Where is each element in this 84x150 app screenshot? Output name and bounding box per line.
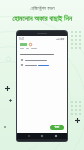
staticText: হোমলোন অফার বাছাই নিন [12, 13, 72, 23]
button[interactable]: Back [27, 134, 31, 138]
staticText: 9:41 [19, 37, 25, 41]
button[interactable]: পরবর্তী [50, 125, 64, 130]
button[interactable]: Home [40, 134, 44, 138]
staticText: পরবর্তী [54, 126, 60, 129]
button[interactable]: Recents [54, 134, 58, 138]
staticText: রেজিস্ট্রেশন করুন [30, 5, 55, 11]
